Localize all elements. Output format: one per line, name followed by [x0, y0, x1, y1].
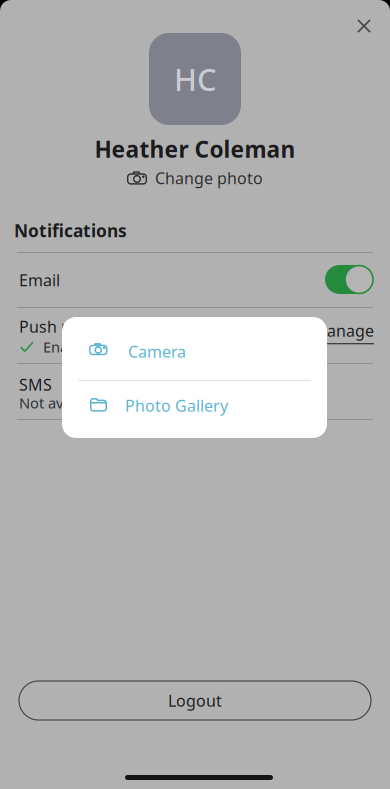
button[interactable]: Logout	[19, 681, 371, 720]
staticText: HC	[174, 59, 216, 99]
button[interactable]: Change photo	[0, 163, 390, 193]
staticText: Camera	[128, 341, 186, 362]
staticText: Photo Gallery	[125, 395, 228, 416]
staticText: Enabled	[43, 337, 98, 356]
staticText: Not available	[19, 393, 108, 412]
button[interactable]: Camera	[62, 317, 327, 380]
staticText: Notifications	[14, 219, 127, 242]
staticText: Change photo	[155, 167, 263, 189]
staticText: SMS	[19, 374, 52, 395]
button[interactable]: Manage	[312, 320, 374, 344]
staticText: Heather Coleman	[94, 134, 295, 164]
button[interactable]: Photo Gallery	[62, 380, 327, 438]
staticText: Push notifications	[19, 316, 156, 337]
staticText: Email	[19, 269, 60, 291]
button[interactable]: Close	[342, 4, 386, 48]
button[interactable]: Email notifications, on	[325, 265, 373, 295]
staticText: Logout	[168, 690, 222, 711]
staticText: Manage	[312, 320, 374, 341]
